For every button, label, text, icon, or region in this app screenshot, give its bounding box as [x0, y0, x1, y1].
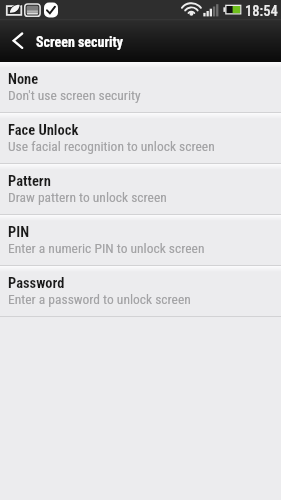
staticText: Don't use screen security [8, 87, 141, 103]
staticText: Screen security [36, 34, 124, 50]
staticText: PIN [8, 224, 30, 241]
staticText: Face Unlock [8, 122, 79, 139]
button[interactable]: Back [0, 19, 34, 62]
staticText: Pattern [8, 173, 51, 190]
staticText: None [8, 71, 39, 88]
button[interactable]: Face Unlock [0, 113, 281, 163]
staticText: 18:54 [245, 3, 278, 20]
staticText: Enter a password to unlock screen [8, 291, 191, 307]
button[interactable]: None [0, 62, 281, 112]
button[interactable]: PIN [0, 215, 281, 265]
staticText: Use facial recognition to unlock screen [8, 138, 215, 154]
staticText: Draw pattern to unlock screen [8, 189, 167, 205]
staticText: Password [8, 275, 65, 292]
button[interactable]: Password [0, 266, 281, 316]
button[interactable]: Pattern [0, 164, 281, 214]
staticText: Enter a numeric PIN to unlock screen [8, 240, 205, 256]
